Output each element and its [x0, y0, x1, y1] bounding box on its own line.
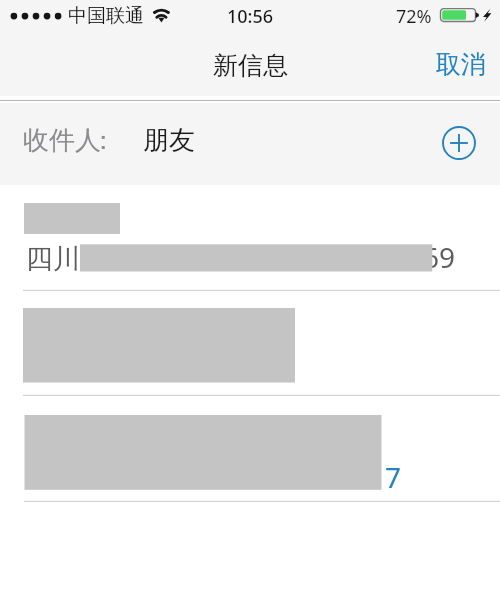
- staticText: 69: [423, 238, 456, 276]
- staticText: 收件人: [23, 124, 101, 157]
- staticText: 10:56: [227, 4, 274, 29]
- button[interactable]: 7: [0, 396, 500, 502]
- staticText: 中国联通: [68, 4, 144, 28]
- button[interactable]: 四川: [0, 185, 500, 290]
- button[interactable]: [0, 290, 500, 396]
- staticText: 取消: [436, 49, 486, 80]
- button[interactable]: Add recipient: [437, 121, 481, 165]
- staticText: 7: [385, 458, 402, 496]
- staticText: 朋友: [143, 124, 195, 157]
- button[interactable]: 取消: [432, 43, 490, 86]
- staticText: ：: [90, 124, 116, 157]
- staticText: 新信息: [213, 50, 288, 81]
- staticText: 72%: [396, 4, 432, 29]
- staticText: 四川: [26, 242, 80, 276]
